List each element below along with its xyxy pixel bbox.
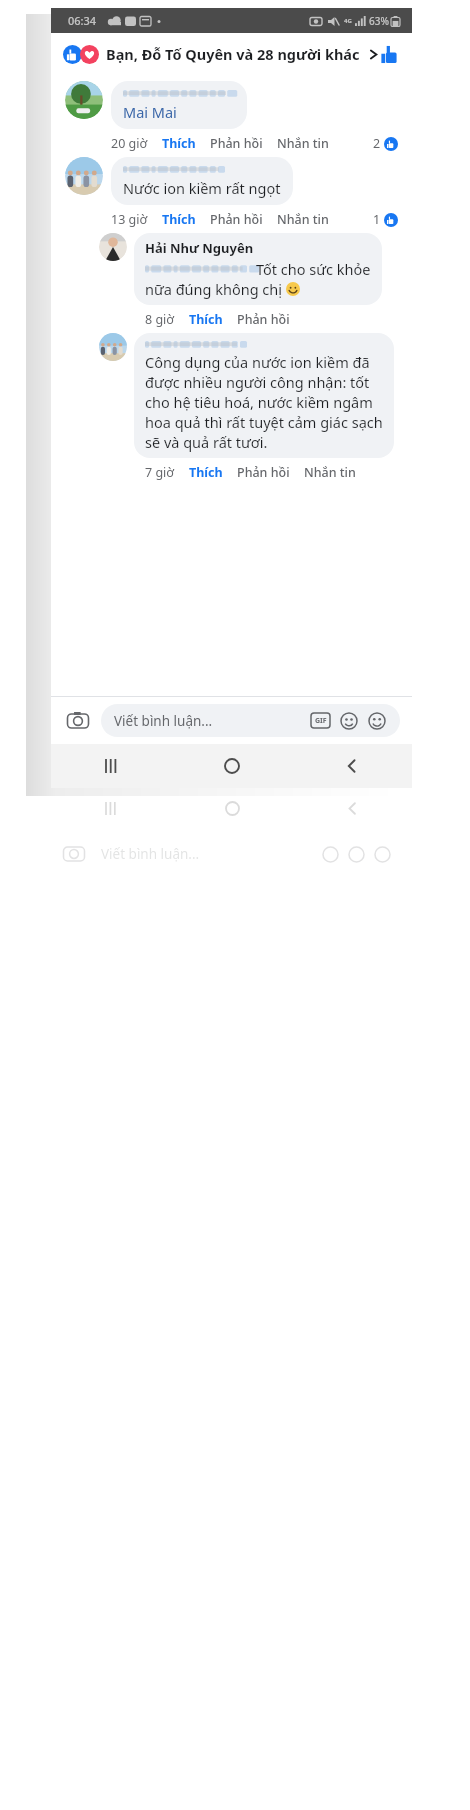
button[interactable]: Nước ion kiềm rất ngọt bbox=[51, 155, 412, 205]
button[interactable]: Mai Mai bbox=[51, 77, 412, 129]
button[interactable]: Recents bbox=[51, 744, 172, 788]
button[interactable]: Nhắn tin bbox=[277, 135, 329, 152]
button[interactable]: Sticker bbox=[338, 710, 359, 731]
staticText: Công dụng của nước ion kiềm đã được nhiề… bbox=[145, 352, 383, 452]
staticText: Tốt cho sức khỏe bbox=[256, 259, 371, 279]
button[interactable]: GIF bbox=[310, 710, 331, 731]
button[interactable]: Phản hồi bbox=[210, 211, 263, 228]
button[interactable]: Viết bình luận... bbox=[101, 704, 400, 737]
staticText: Mai Mai bbox=[123, 102, 177, 122]
button[interactable]: Công dụng của nước ion kiềm đã được nhiề… bbox=[51, 331, 412, 458]
staticText: Bạn, Đỗ Tố Quyên và 28 người khác bbox=[106, 44, 360, 64]
staticText: Nước ion kiềm rất ngọt bbox=[123, 178, 281, 198]
button[interactable]: Thích bbox=[162, 211, 196, 228]
staticText: Viết bình luận... bbox=[114, 712, 213, 730]
staticText: nữa đúng không chị bbox=[145, 279, 286, 299]
staticText: 2 bbox=[373, 135, 381, 152]
button[interactable]: Hải Như Nguyên bbox=[51, 231, 412, 305]
button[interactable]: Camera bbox=[63, 706, 93, 736]
button[interactable]: 7 giờ bbox=[145, 464, 175, 481]
button[interactable]: 20 giờ bbox=[111, 135, 148, 152]
button[interactable]: Thích bbox=[189, 311, 223, 328]
staticText: GIF bbox=[315, 716, 327, 726]
button[interactable]: Phản hồi bbox=[237, 464, 290, 481]
button[interactable]: 8 giờ bbox=[145, 311, 175, 328]
staticText: 63% bbox=[369, 14, 389, 28]
button[interactable]: 2 bbox=[373, 135, 398, 152]
button[interactable]: 1 bbox=[373, 211, 398, 228]
staticText: Hải Như Nguyên bbox=[145, 239, 254, 257]
button[interactable]: Phản hồi bbox=[210, 135, 263, 152]
staticText: 06:34 bbox=[68, 13, 97, 28]
button[interactable]: Home bbox=[172, 744, 292, 788]
button[interactable]: Thích bbox=[189, 464, 223, 481]
button[interactable]: Emoji bbox=[366, 710, 387, 731]
button[interactable]: Back bbox=[292, 744, 412, 788]
button[interactable]: Nhắn tin bbox=[304, 464, 356, 481]
button[interactable]: Thích bbox=[162, 135, 196, 152]
button[interactable]: Nhắn tin bbox=[277, 211, 329, 228]
staticText: 4G bbox=[344, 17, 352, 25]
button[interactable]: Phản hồi bbox=[237, 311, 290, 328]
button[interactable]: 13 giờ bbox=[111, 211, 148, 228]
button[interactable]: Like bbox=[380, 41, 400, 67]
staticText: Viết bình luận... bbox=[101, 845, 200, 863]
staticText: 1 bbox=[373, 211, 381, 228]
button[interactable]: Bạn, Đỗ Tố Quyên và 28 người khác bbox=[51, 33, 412, 75]
